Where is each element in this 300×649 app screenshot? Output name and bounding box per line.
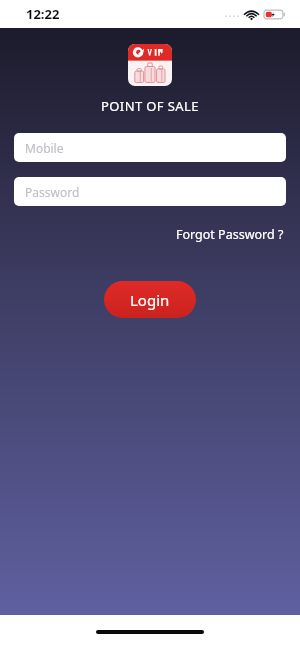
staticText: POINT OF SALE [101, 97, 199, 115]
staticText: 12:22 [26, 5, 60, 23]
staticText: Forgot Password ? [176, 226, 284, 243]
button[interactable]: Password [14, 177, 286, 206]
staticText: Password [25, 184, 80, 200]
button[interactable]: Mobile [14, 133, 286, 162]
button[interactable]: Login [104, 281, 196, 318]
button[interactable]: Forgot Password ? [174, 224, 286, 245]
staticText: Login [130, 290, 170, 310]
staticText: Mobile [25, 140, 64, 156]
